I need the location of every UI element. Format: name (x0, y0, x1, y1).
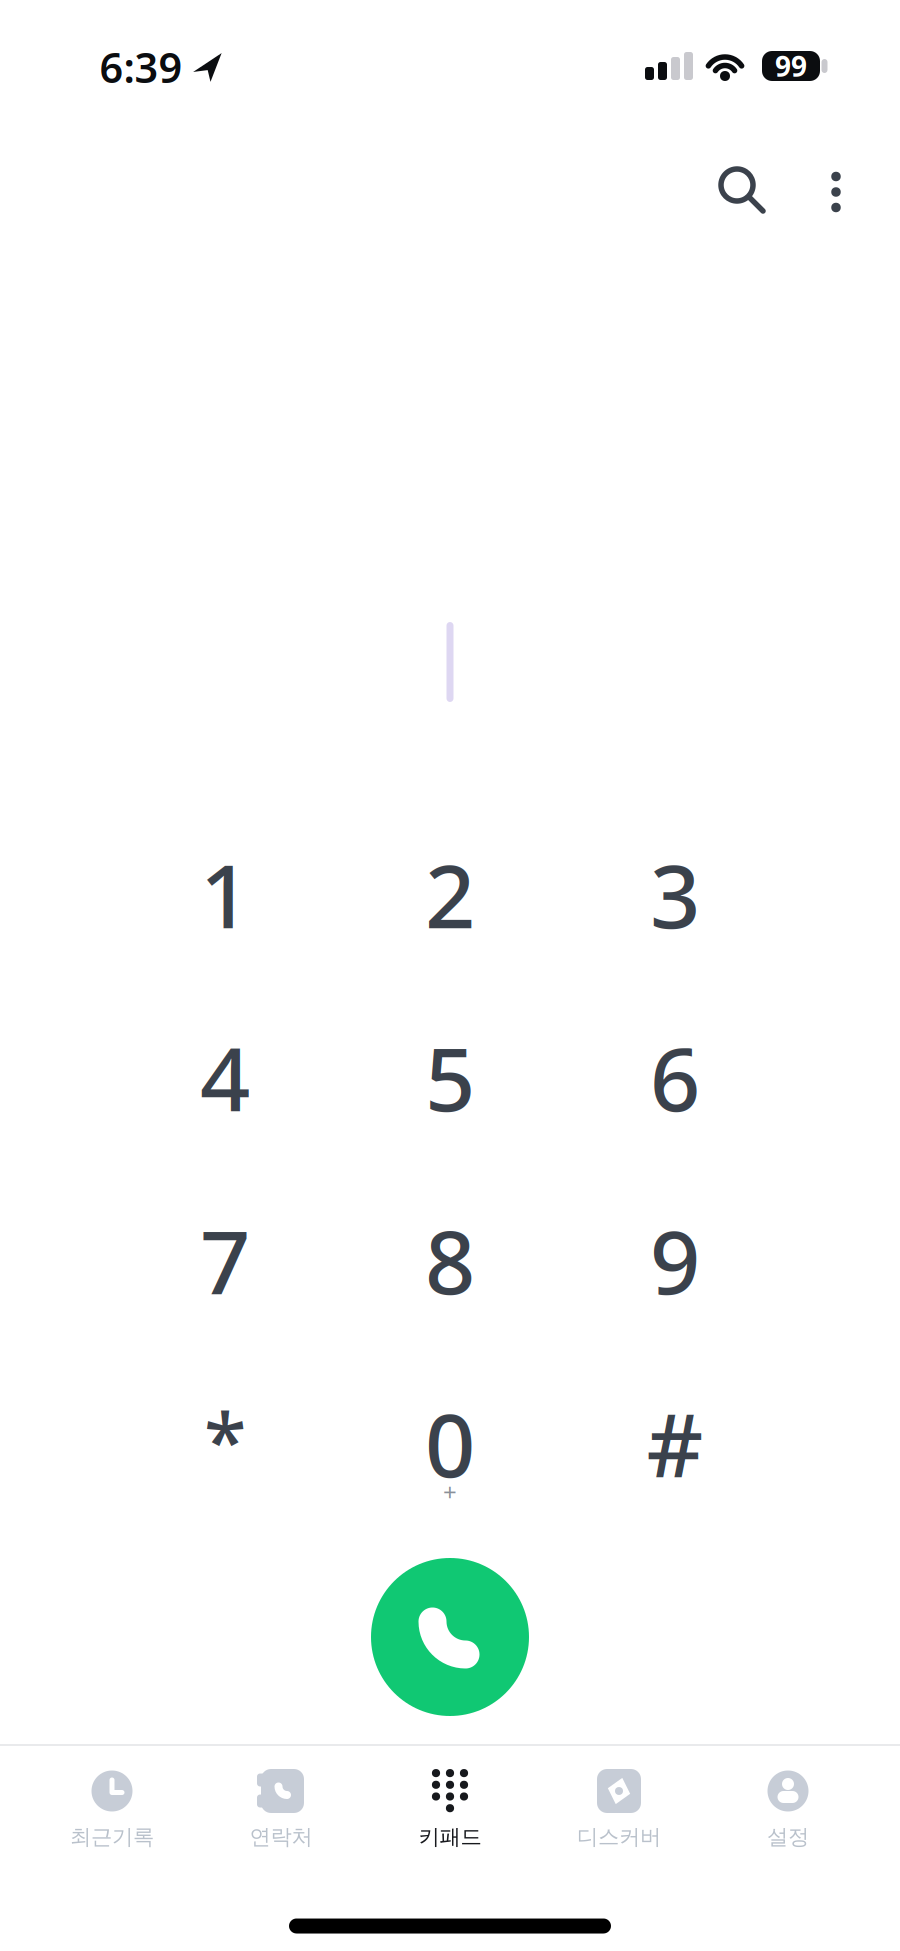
staticText: 2 (425, 836, 475, 952)
button[interactable]: 연락처 (196, 1750, 365, 1860)
button[interactable]: Call (371, 1558, 529, 1716)
staticText: 키패드 (418, 1824, 481, 1850)
button[interactable]: 7 (112, 1168, 337, 1351)
staticText: 99 (775, 47, 807, 85)
button[interactable]: 8 (337, 1168, 562, 1351)
button[interactable]: Search (718, 166, 766, 214)
button[interactable]: 5 (337, 985, 562, 1168)
button[interactable]: 6 (562, 985, 787, 1168)
button[interactable]: 9 (562, 1168, 787, 1351)
button[interactable]: 2 (337, 802, 562, 985)
staticText: # (646, 1385, 703, 1501)
button[interactable]: # (562, 1351, 787, 1534)
staticText: 9 (650, 1202, 700, 1318)
staticText: 6:39 (99, 40, 182, 94)
staticText: 5 (425, 1019, 475, 1135)
button[interactable]: 디스커버 (534, 1750, 703, 1860)
staticText: * (204, 1389, 246, 1492)
button[interactable]: More (814, 164, 858, 220)
staticText: 3 (650, 836, 700, 952)
button[interactable]: 설정 (703, 1750, 872, 1860)
button[interactable]: 4 (112, 985, 337, 1168)
staticText: 7 (200, 1202, 250, 1318)
button[interactable]: 최근기록 (27, 1750, 196, 1860)
staticText: 4 (200, 1019, 250, 1135)
button[interactable]: * (112, 1351, 337, 1534)
staticText: 1 (200, 836, 250, 952)
button[interactable]: 1 (112, 802, 337, 985)
staticText: 6 (650, 1019, 700, 1135)
button[interactable]: 키패드 (365, 1750, 534, 1860)
staticText: 8 (425, 1202, 475, 1318)
staticText: 디스커버 (577, 1824, 661, 1850)
staticText: + (443, 1476, 457, 1508)
staticText: 0 (425, 1385, 475, 1501)
staticText: 최근기록 (70, 1824, 154, 1850)
staticText: 연락처 (249, 1824, 312, 1850)
staticText: 설정 (767, 1824, 809, 1850)
button[interactable]: 3 (562, 802, 787, 985)
button[interactable]: 0 (337, 1351, 562, 1534)
